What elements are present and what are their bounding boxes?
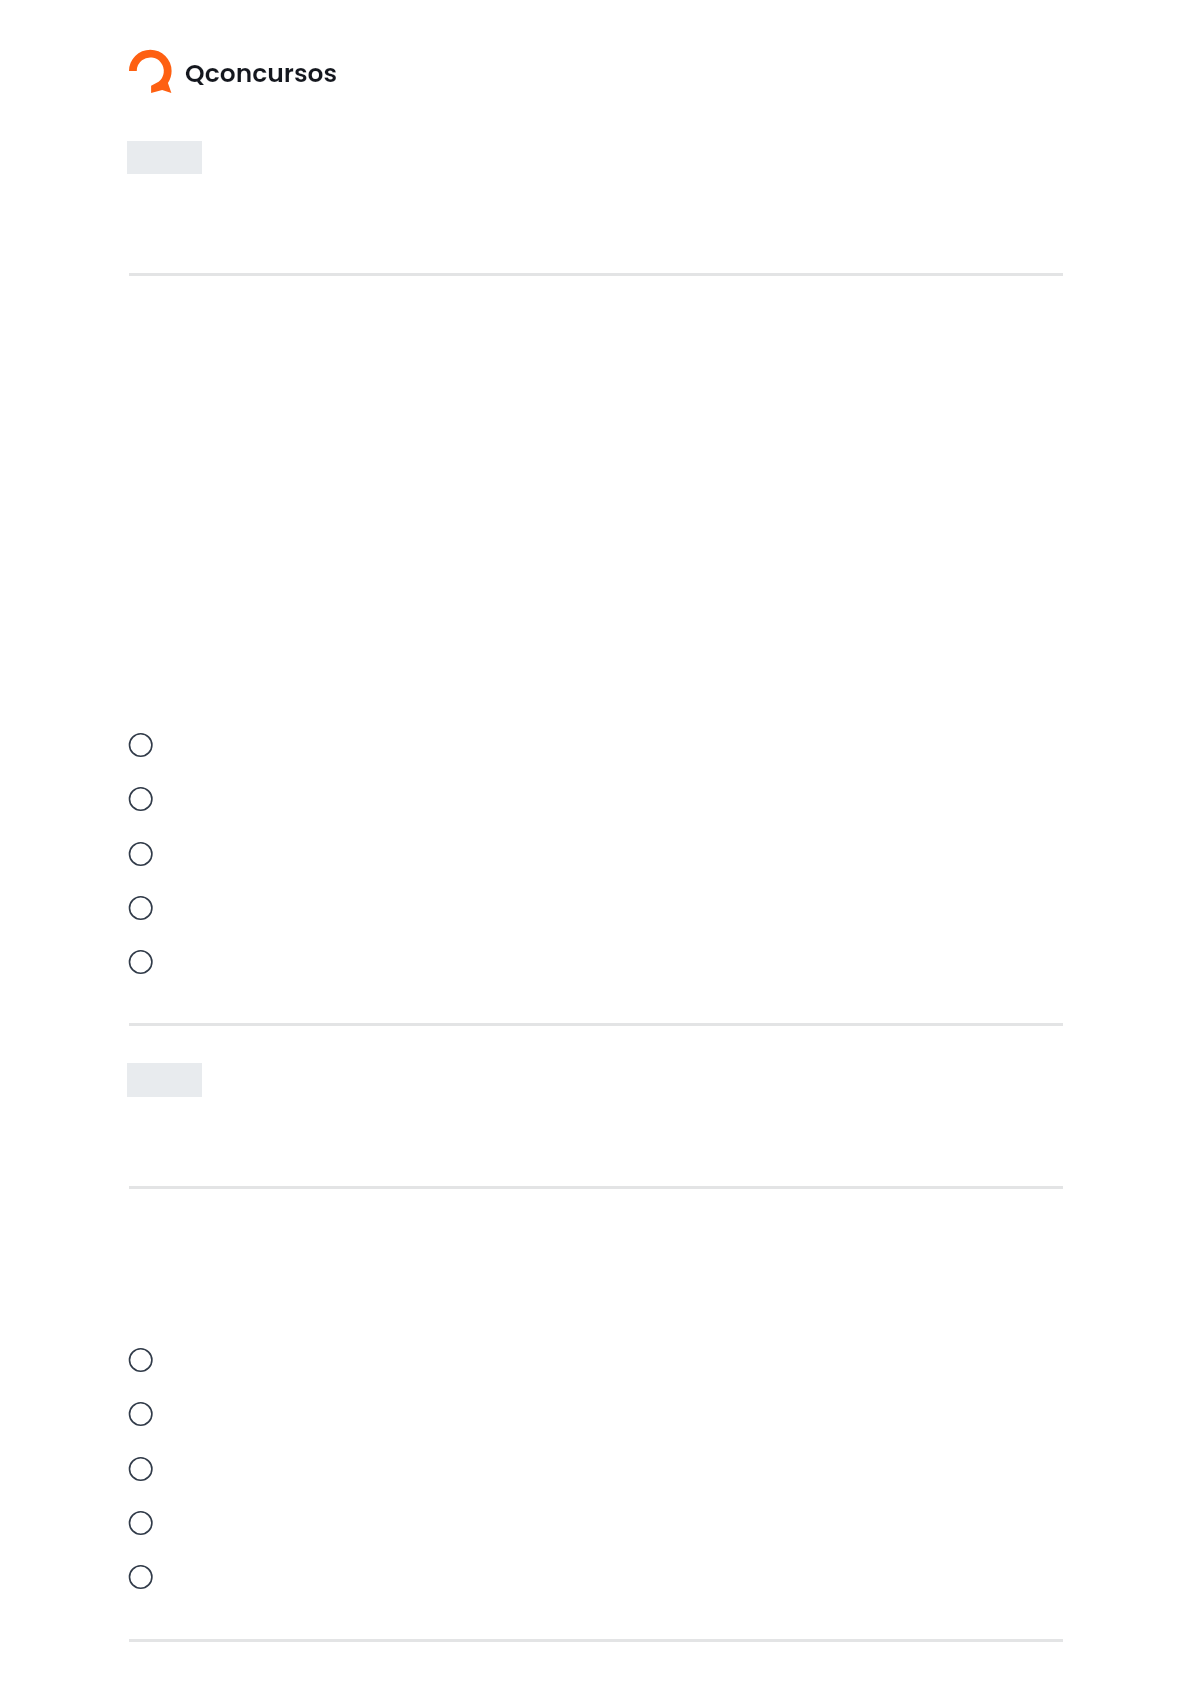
- staticText: Qconcursos: [185, 56, 338, 91]
- button[interactable]: Alternative C: [0, 1442, 1192, 1496]
- button[interactable]: Alternative E: [0, 935, 1192, 989]
- button[interactable]: Alternative D: [0, 881, 1192, 935]
- button[interactable]: Qconcursos home: [128, 44, 338, 98]
- button[interactable]: Alternative A: [0, 1333, 1192, 1387]
- button[interactable]: Alternative B: [0, 1387, 1192, 1441]
- button[interactable]: Alternative E: [0, 1550, 1192, 1604]
- button[interactable]: Alternative A: [0, 718, 1192, 772]
- button[interactable]: Alternative D: [0, 1496, 1192, 1550]
- button[interactable]: Alternative C: [0, 827, 1192, 881]
- button[interactable]: Alternative B: [0, 772, 1192, 826]
